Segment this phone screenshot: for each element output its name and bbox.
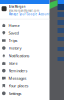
staticText: Reminders — [8, 68, 27, 73]
button[interactable]: Store — [0, 59, 49, 67]
staticText: Notifications — [8, 53, 29, 58]
staticText: Home — [8, 23, 19, 28]
staticText: Trips — [8, 38, 17, 43]
staticText: Manage your Google Account — [8, 12, 49, 16]
staticText: Store — [8, 60, 17, 66]
button[interactable]: Home — [0, 22, 49, 29]
staticText: Settings — [8, 91, 21, 96]
staticText: Saved — [8, 30, 18, 36]
button[interactable]: History — [0, 44, 49, 52]
staticText: Alex Morgan — [9, 5, 26, 8]
button[interactable]: Notifications — [0, 52, 49, 59]
staticText: alex.morgan@gmail.com — [9, 9, 39, 12]
button[interactable]: Trips — [0, 37, 49, 44]
staticText: Your places — [8, 83, 28, 88]
button[interactable]: Settings — [0, 89, 49, 97]
button[interactable]: Messages — [0, 74, 49, 82]
button[interactable]: Reminders — [0, 67, 49, 74]
staticText: History — [8, 45, 21, 51]
button[interactable]: Your places — [0, 82, 49, 89]
button[interactable]: Manage your Google Account — [0, 12, 49, 16]
button[interactable]: Saved — [0, 29, 49, 37]
staticText: Messages — [8, 76, 26, 81]
